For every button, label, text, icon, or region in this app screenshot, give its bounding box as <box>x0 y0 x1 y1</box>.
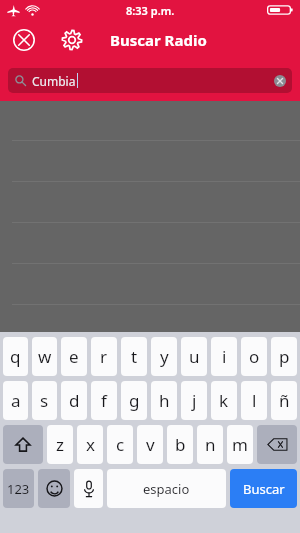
staticText: r <box>100 345 108 368</box>
staticText: n <box>205 433 216 456</box>
staticText: Buscar <box>243 480 285 498</box>
button[interactable]: n <box>197 425 223 464</box>
staticText: h <box>159 389 170 412</box>
button[interactable]: Clear search text <box>269 70 290 91</box>
button[interactable]: Shift <box>3 425 43 464</box>
button[interactable]: 123 <box>3 469 34 508</box>
staticText: t <box>131 345 138 368</box>
button[interactable]: z <box>47 425 73 464</box>
button[interactable]: c <box>107 425 133 464</box>
staticText: l <box>252 389 257 412</box>
button[interactable]: b <box>167 425 193 464</box>
staticText: d <box>69 389 80 412</box>
staticText: y <box>160 345 169 368</box>
staticText: g <box>129 389 140 412</box>
button[interactable]: Backspace <box>257 425 297 464</box>
staticText: e <box>69 345 79 368</box>
staticText: Cumbia <box>32 73 76 89</box>
button[interactable]: t <box>121 337 147 376</box>
button[interactable]: i <box>211 337 237 376</box>
button[interactable]: m <box>227 425 253 464</box>
staticText: s <box>40 389 49 412</box>
button[interactable]: ñ <box>271 381 297 420</box>
button[interactable]: Emoji keyboard <box>38 469 70 508</box>
button[interactable]: d <box>61 381 87 420</box>
button[interactable]: l <box>241 381 267 420</box>
staticText: espacio <box>143 480 190 498</box>
staticText: b <box>175 433 186 456</box>
button[interactable]: y <box>151 337 177 376</box>
staticText: Buscar Radio <box>110 30 207 50</box>
staticText: v <box>146 433 155 456</box>
staticText: m <box>232 433 248 456</box>
button[interactable]: Close <box>6 22 42 58</box>
staticText: q <box>10 345 21 368</box>
staticText: p <box>279 345 290 368</box>
button[interactable]: v <box>137 425 163 464</box>
button[interactable]: Settings <box>54 22 90 58</box>
button[interactable]: k <box>211 381 237 420</box>
staticText: k <box>219 389 229 412</box>
button[interactable]: e <box>61 337 87 376</box>
button[interactable]: s <box>32 381 57 420</box>
staticText: 123 <box>7 480 30 498</box>
button[interactable]: a <box>3 381 28 420</box>
button[interactable]: Buscar <box>230 469 297 508</box>
button[interactable]: Cumbia <box>8 68 292 93</box>
button[interactable]: q <box>3 337 28 376</box>
button[interactable]: r <box>91 337 117 376</box>
staticText: a <box>11 389 21 412</box>
staticText: x <box>86 433 95 456</box>
staticText: z <box>56 433 64 456</box>
button[interactable]: f <box>91 381 117 420</box>
staticText: 8:33 p.m. <box>126 3 175 18</box>
staticText: i <box>222 345 227 368</box>
button[interactable]: w <box>32 337 57 376</box>
button[interactable]: g <box>121 381 147 420</box>
staticText: w <box>38 345 52 368</box>
staticText: f <box>101 389 107 412</box>
staticText: u <box>189 345 200 368</box>
button[interactable]: u <box>181 337 207 376</box>
button[interactable]: espacio <box>107 469 226 508</box>
button[interactable]: p <box>271 337 297 376</box>
button[interactable]: x <box>77 425 103 464</box>
staticText: ñ <box>279 389 290 412</box>
staticText: c <box>116 433 125 456</box>
staticText: o <box>249 345 260 368</box>
button[interactable]: j <box>181 381 207 420</box>
button[interactable]: o <box>241 337 267 376</box>
button[interactable]: h <box>151 381 177 420</box>
button[interactable]: Dictate <box>74 469 103 508</box>
staticText: j <box>192 389 197 412</box>
